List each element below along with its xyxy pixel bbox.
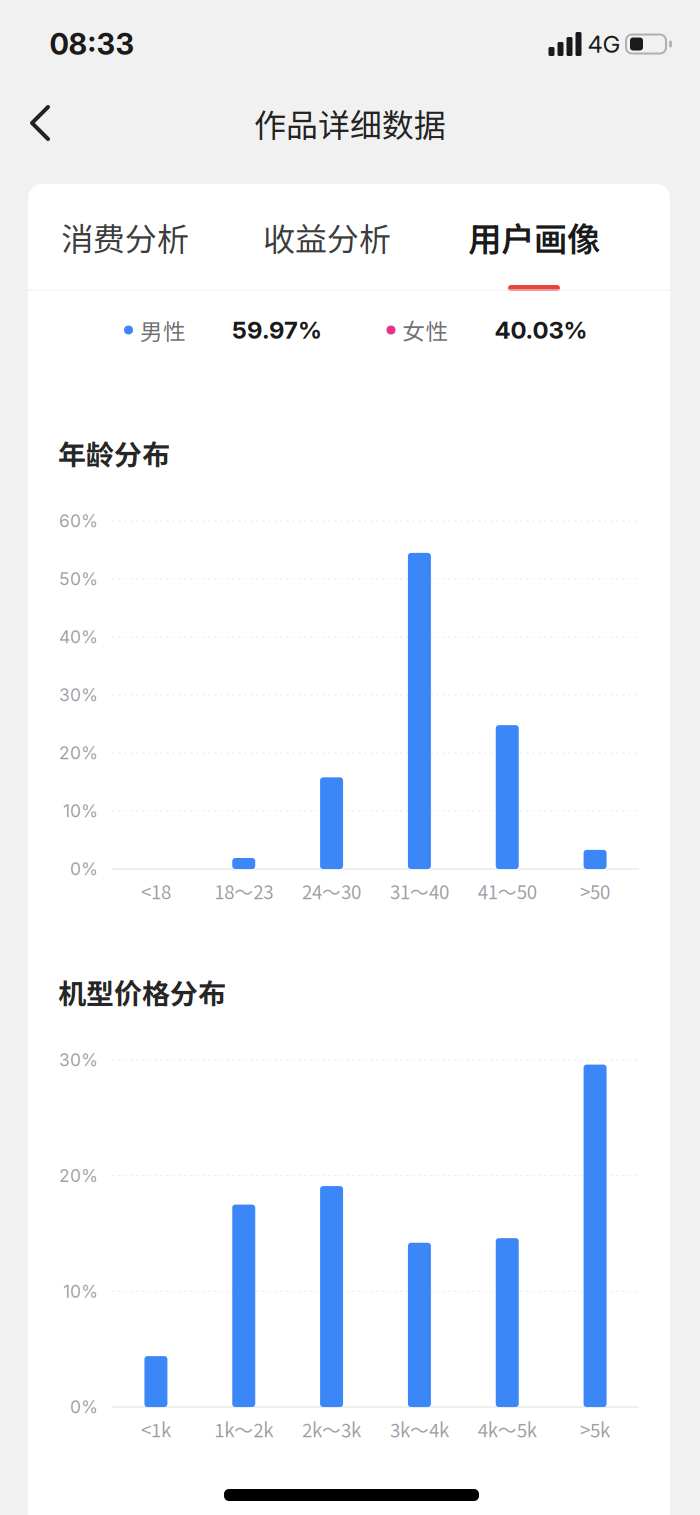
staticText: 30% bbox=[59, 1049, 98, 1070]
staticText: 08:33 bbox=[49, 26, 134, 62]
button[interactable]: 用户画像 bbox=[444, 184, 624, 290]
staticText: 24～30 bbox=[302, 877, 361, 904]
staticText: <1k bbox=[141, 1415, 171, 1442]
staticText: 机型价格分布 bbox=[58, 972, 226, 1012]
staticText: 1k～2k bbox=[214, 1415, 273, 1442]
staticText: 30% bbox=[59, 684, 98, 705]
staticText: 41～50 bbox=[478, 877, 537, 904]
staticText: 年龄分布 bbox=[58, 433, 170, 473]
staticText: 20% bbox=[59, 742, 98, 763]
staticText: 59.97% bbox=[232, 315, 322, 344]
staticText: 4G bbox=[587, 29, 620, 58]
staticText: 女性 bbox=[402, 314, 448, 346]
staticText: 收益分析 bbox=[263, 214, 391, 260]
staticText: 作品详细数据 bbox=[254, 100, 446, 146]
staticText: 31～40 bbox=[390, 877, 449, 904]
staticText: <18 bbox=[141, 877, 171, 904]
staticText: 20% bbox=[59, 1165, 98, 1186]
staticText: 2k～3k bbox=[302, 1415, 361, 1442]
button[interactable]: Back bbox=[8, 91, 72, 155]
staticText: 50% bbox=[59, 568, 98, 589]
button[interactable]: 消费分析 bbox=[35, 184, 215, 290]
staticText: 10% bbox=[63, 800, 98, 821]
staticText: 用户画像 bbox=[468, 213, 600, 261]
staticText: 40% bbox=[59, 626, 98, 647]
staticText: 40.03% bbox=[494, 315, 587, 344]
staticText: 3k～4k bbox=[390, 1415, 449, 1442]
staticText: 消费分析 bbox=[61, 214, 189, 260]
staticText: >50 bbox=[580, 877, 610, 904]
staticText: 18～23 bbox=[214, 877, 273, 904]
button[interactable]: 收益分析 bbox=[237, 184, 417, 290]
staticText: 60% bbox=[59, 510, 98, 531]
staticText: 0% bbox=[70, 858, 98, 879]
staticText: 10% bbox=[63, 1281, 98, 1302]
staticText: 0% bbox=[70, 1396, 98, 1417]
staticText: >5k bbox=[580, 1415, 610, 1442]
staticText: 4k～5k bbox=[478, 1415, 537, 1442]
staticText: 男性 bbox=[140, 314, 186, 346]
